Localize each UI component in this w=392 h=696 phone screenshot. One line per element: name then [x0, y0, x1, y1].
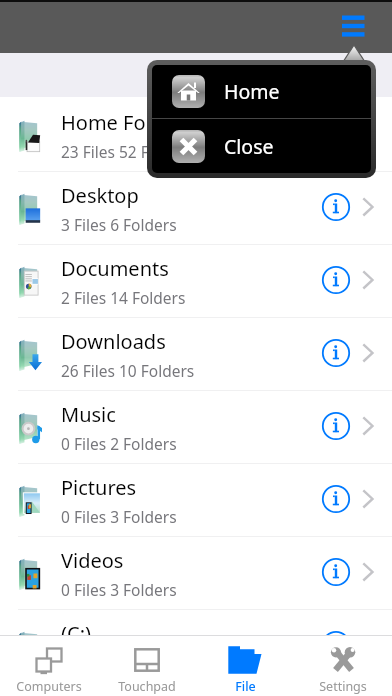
staticText: File: [235, 678, 256, 695]
staticText: Music: [61, 401, 116, 428]
button[interactable]: More info: [320, 337, 352, 369]
staticText: Touchpad: [118, 678, 176, 695]
staticText: Close: [224, 133, 274, 160]
button[interactable]: More info: [320, 191, 352, 223]
button[interactable]: Touchpad: [98, 636, 196, 696]
staticText: 26 Files 10 Folders: [61, 360, 195, 381]
staticText: 37591 Files 9 Folders: [61, 652, 213, 673]
button[interactable]: Downloads: [0, 318, 392, 391]
button[interactable]: File: [196, 636, 294, 696]
staticText: 0 Files 3 Folders: [61, 579, 177, 600]
button[interactable]: More info: [320, 410, 352, 442]
button[interactable]: Documents: [0, 245, 392, 318]
button[interactable]: (C:): [0, 610, 392, 683]
staticText: Pictures: [61, 474, 137, 501]
button[interactable]: Home Folder: [0, 99, 392, 172]
button[interactable]: More info: [320, 629, 352, 661]
button[interactable]: More info: [320, 118, 352, 150]
button[interactable]: Computers: [0, 636, 98, 696]
staticText: 3 Files 6 Folders: [61, 214, 177, 235]
button[interactable]: Videos: [0, 537, 392, 610]
staticText: Home Folder: [61, 109, 183, 136]
button[interactable]: Close: [152, 119, 371, 173]
button[interactable]: More info: [320, 483, 352, 515]
staticText: 0 Files 2 Folders: [61, 433, 177, 454]
button[interactable]: More info: [320, 556, 352, 588]
button[interactable]: Settings: [294, 636, 392, 696]
button[interactable]: Pictures: [0, 464, 392, 537]
staticText: (C:): [61, 620, 91, 647]
button[interactable]: Music: [0, 391, 392, 464]
staticText: 2 Files 14 Folders: [61, 287, 186, 308]
button[interactable]: More info: [320, 264, 352, 296]
button[interactable]: Home: [152, 65, 371, 118]
button[interactable]: Menu: [342, 14, 366, 39]
staticText: Videos: [61, 547, 124, 574]
button[interactable]: Desktop: [0, 172, 392, 245]
staticText: Downloads: [61, 328, 166, 355]
staticText: Home: [224, 78, 280, 105]
staticText: Settings: [319, 678, 367, 695]
staticText: Desktop: [61, 182, 139, 209]
staticText: Computers: [16, 678, 82, 695]
staticText: 0 Files 3 Folders: [61, 506, 177, 527]
staticText: Documents: [61, 255, 169, 282]
staticText: 23 Files 52 Folders: [61, 141, 195, 162]
